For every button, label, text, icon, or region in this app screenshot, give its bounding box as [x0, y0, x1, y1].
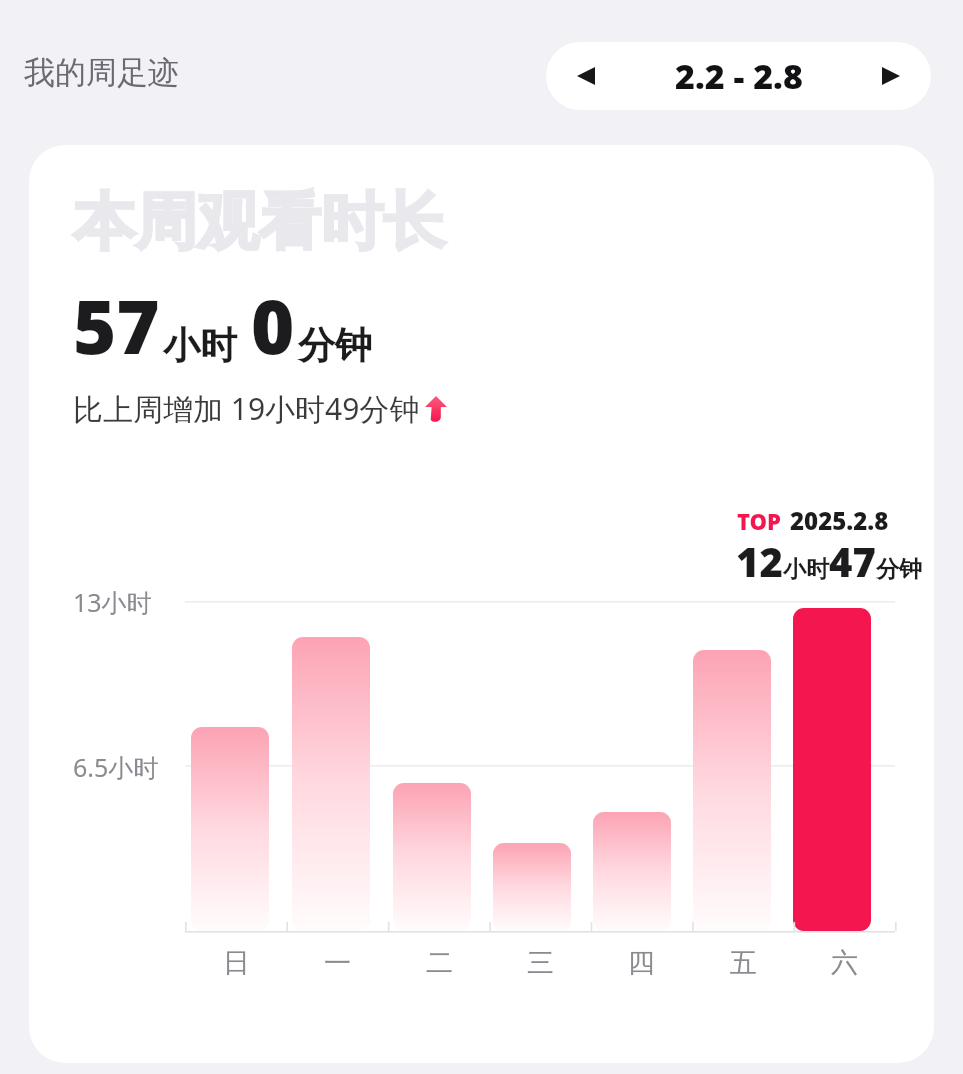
- staticText: 13小时: [73, 585, 152, 619]
- staticText: 小时: [163, 322, 237, 369]
- staticText: 比上周增加 19小时49分钟: [73, 388, 420, 429]
- staticText: 分钟: [298, 322, 372, 369]
- button[interactable]: 日: [208, 941, 264, 985]
- button[interactable]: Previous week: [558, 48, 614, 104]
- staticText: 日: [223, 946, 250, 980]
- button[interactable]: Next week: [863, 48, 919, 104]
- button[interactable]: TOP: [720, 490, 930, 588]
- staticText: 0: [251, 275, 295, 376]
- staticText: 三: [527, 946, 554, 980]
- staticText: 五: [730, 946, 757, 980]
- staticText: 2.2 - 2.8: [675, 53, 803, 99]
- staticText: 6.5小时: [73, 750, 159, 784]
- staticText: 四: [628, 946, 655, 980]
- staticText: 六: [831, 946, 858, 980]
- button[interactable]: 五: [715, 941, 771, 985]
- staticText: 小时: [783, 555, 829, 584]
- button[interactable]: 六: [816, 941, 872, 985]
- staticText: 12: [736, 534, 783, 588]
- staticText: 我的周足迹: [24, 53, 179, 92]
- staticText: 二: [426, 946, 453, 980]
- staticText: 本周观看时长: [73, 183, 445, 261]
- button[interactable]: 三: [512, 941, 568, 985]
- staticText: 一: [324, 946, 351, 980]
- button[interactable]: 一: [309, 941, 365, 985]
- staticText: TOP: [737, 506, 782, 536]
- button[interactable]: 本周观看时长: [29, 145, 934, 1063]
- staticText: 2025.2.8: [790, 504, 889, 537]
- staticText: 分钟: [876, 555, 922, 584]
- button[interactable]: 二: [411, 941, 467, 985]
- button[interactable]: 四: [613, 941, 669, 985]
- staticText: 57: [73, 275, 160, 376]
- staticText: 47: [829, 534, 876, 588]
